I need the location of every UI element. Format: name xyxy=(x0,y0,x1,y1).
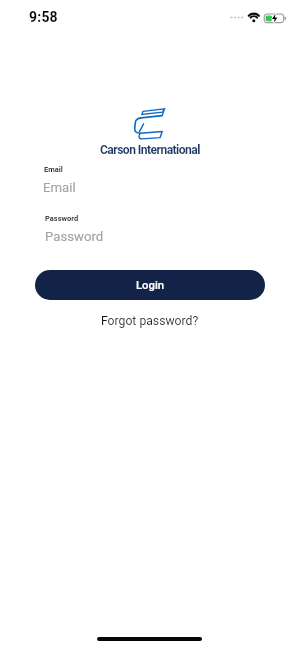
button[interactable]: Password xyxy=(35,224,265,247)
staticText: Login xyxy=(136,279,165,292)
staticText: 9:58 xyxy=(29,9,58,25)
button[interactable]: Email xyxy=(35,176,265,199)
staticText: Carson International xyxy=(100,143,200,157)
staticText: Email xyxy=(43,180,76,195)
staticText: Password xyxy=(45,229,104,244)
staticText: Password xyxy=(45,214,79,223)
staticText: Email xyxy=(44,165,63,174)
button[interactable]: Login xyxy=(35,270,265,300)
button[interactable]: Forgot password? xyxy=(101,314,199,328)
